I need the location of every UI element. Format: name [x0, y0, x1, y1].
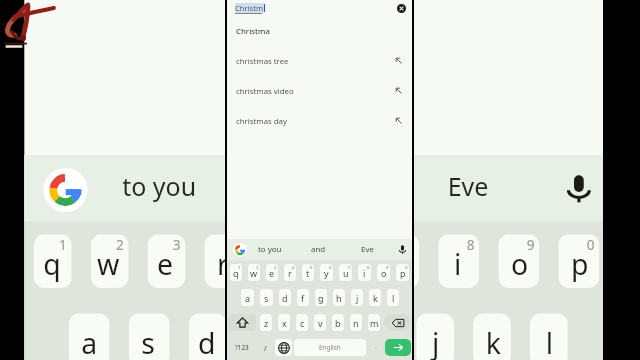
- button[interactable]: to you: [245, 239, 294, 260]
- button[interactable]: to you: [81, 155, 236, 222]
- button[interactable]: Voice input: [392, 239, 412, 260]
- button[interactable]: Eve: [343, 239, 392, 260]
- staticText: a: [245, 292, 251, 304]
- staticText: 7: [348, 264, 351, 270]
- button[interactable]: p: [396, 264, 409, 281]
- button[interactable]: u: [378, 234, 419, 288]
- button[interactable]: g: [315, 289, 327, 306]
- button[interactable]: r: [204, 234, 242, 288]
- staticText: p: [571, 244, 590, 282]
- button[interactable]: q: [230, 264, 242, 281]
- button[interactable]: a: [68, 313, 110, 360]
- staticText: t: [306, 267, 310, 279]
- staticText: o: [381, 267, 387, 279]
- button[interactable]: r: [284, 264, 296, 281]
- button[interactable]: t: [261, 234, 299, 288]
- button[interactable]: v: [314, 314, 326, 331]
- button[interactable]: Voice input: [546, 155, 609, 222]
- staticText: g: [312, 323, 331, 360]
- button[interactable]: Google: [227, 239, 245, 260]
- button[interactable]: christmas tree: [227, 46, 412, 76]
- button[interactable]: y: [320, 264, 333, 281]
- staticText: t: [274, 244, 286, 282]
- button[interactable]: e: [266, 264, 278, 281]
- button[interactable]: h: [359, 313, 397, 360]
- button[interactable]: n: [350, 314, 362, 331]
- staticText: 2: [256, 264, 259, 270]
- button[interactable]: English: [294, 339, 366, 356]
- button[interactable]: f: [245, 313, 283, 360]
- button[interactable]: j: [416, 313, 454, 360]
- button[interactable]: /: [258, 339, 273, 356]
- button[interactable]: u: [339, 264, 352, 281]
- button[interactable]: i: [358, 264, 371, 281]
- button[interactable]: b: [332, 314, 344, 331]
- button[interactable]: i: [438, 234, 479, 288]
- button[interactable]: d: [279, 289, 291, 306]
- button[interactable]: Google: [24, 155, 81, 222]
- button[interactable]: c: [296, 314, 308, 331]
- button[interactable]: z: [260, 314, 272, 331]
- button[interactable]: e: [147, 234, 185, 288]
- button[interactable]: s: [260, 289, 273, 306]
- staticText: r: [217, 244, 230, 282]
- button[interactable]: d: [189, 313, 226, 360]
- button[interactable]: Search: [385, 339, 411, 356]
- button[interactable]: christmas video: [227, 76, 412, 106]
- button[interactable]: k: [473, 313, 511, 360]
- staticText: 6: [329, 264, 332, 270]
- button[interactable]: o: [498, 234, 539, 288]
- button[interactable]: Change language: [275, 339, 292, 356]
- staticText: x: [282, 317, 287, 329]
- staticText: /: [264, 343, 267, 353]
- staticText: Christma: [236, 26, 270, 37]
- button[interactable]: f: [297, 289, 309, 306]
- button[interactable]: ?123: [228, 339, 256, 356]
- staticText: Christm: [235, 3, 264, 13]
- staticText: b: [335, 317, 341, 329]
- button[interactable]: p: [558, 234, 599, 288]
- staticText: 9: [386, 264, 389, 270]
- button[interactable]: w: [91, 234, 129, 288]
- staticText: and: [311, 244, 326, 255]
- button[interactable]: l: [387, 289, 399, 306]
- button[interactable]: q: [34, 234, 72, 288]
- staticText: j: [356, 292, 359, 304]
- button[interactable]: Backspace: [384, 314, 411, 331]
- staticText: u: [343, 267, 349, 279]
- button[interactable]: m: [368, 314, 380, 331]
- button[interactable]: Christma: [227, 16, 412, 46]
- button[interactable]: Christm: [227, 0, 412, 16]
- button[interactable]: o: [377, 264, 390, 281]
- button[interactable]: and: [294, 239, 343, 260]
- button[interactable]: l: [530, 313, 568, 360]
- button[interactable]: h: [333, 289, 345, 306]
- staticText: f: [258, 323, 271, 360]
- staticText: c: [300, 317, 305, 329]
- button[interactable]: christmas day: [227, 106, 412, 136]
- staticText: 6: [347, 234, 356, 253]
- staticText: f: [301, 292, 305, 304]
- button[interactable]: k: [369, 289, 381, 306]
- button[interactable]: Eve: [391, 155, 546, 222]
- button[interactable]: j: [351, 289, 363, 306]
- staticText: n: [353, 317, 359, 329]
- staticText: z: [264, 317, 269, 329]
- button[interactable]: Clear query: [397, 4, 406, 13]
- staticText: christmas tree: [236, 56, 289, 67]
- button[interactable]: t: [302, 264, 314, 281]
- button[interactable]: s: [129, 313, 170, 360]
- staticText: y: [331, 244, 347, 282]
- staticText: l: [392, 292, 395, 304]
- button[interactable]: y: [318, 234, 359, 288]
- button[interactable]: x: [278, 314, 290, 331]
- staticText: Eve: [361, 244, 374, 255]
- button[interactable]: w: [248, 264, 260, 281]
- button[interactable]: a: [241, 289, 254, 306]
- button[interactable]: g: [302, 313, 340, 360]
- staticText: k: [486, 323, 501, 360]
- button[interactable]: Shift: [228, 314, 256, 331]
